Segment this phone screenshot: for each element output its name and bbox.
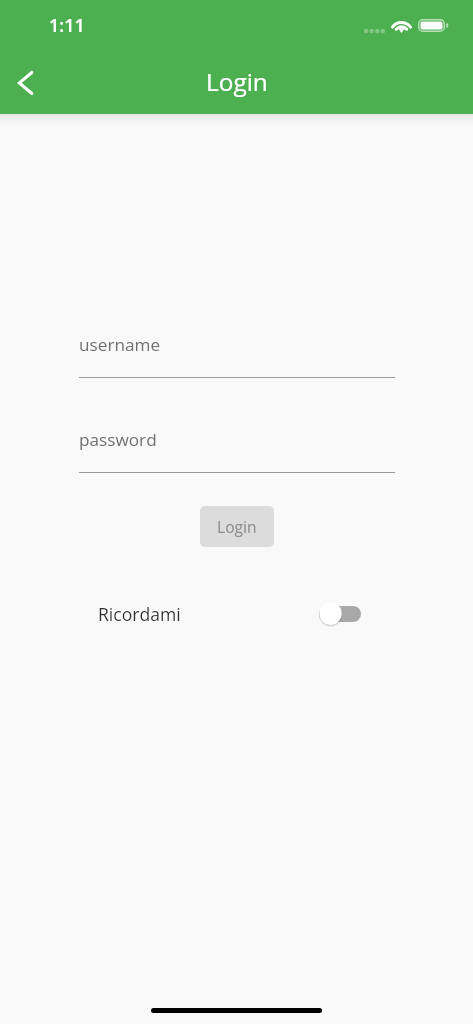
staticText: Ricordami bbox=[98, 602, 181, 626]
button[interactable]: Back bbox=[0, 59, 48, 107]
button[interactable]: Ricordami, off bbox=[319, 602, 361, 625]
staticText: password bbox=[79, 428, 157, 451]
staticText: Login bbox=[217, 516, 257, 537]
staticText: username bbox=[79, 333, 161, 356]
staticText: 1:11 bbox=[49, 13, 85, 38]
staticText: Login bbox=[206, 65, 268, 98]
button[interactable]: Login bbox=[200, 506, 274, 547]
